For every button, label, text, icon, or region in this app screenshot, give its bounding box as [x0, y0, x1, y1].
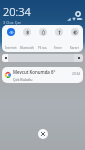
staticText: Mevcut Konumda 6°	[13, 69, 56, 75]
button[interactable]: Clear all notifications	[38, 129, 48, 139]
button[interactable]: Mevcut Konumda 6°	[2, 67, 83, 83]
button[interactable]: Fener	[51, 28, 66, 50]
button[interactable]: Pil tas.	[35, 28, 50, 50]
button[interactable]: İnternet	[3, 28, 18, 50]
button[interactable]: Bluetooth	[19, 28, 34, 50]
staticText: Fener	[54, 46, 63, 50]
staticText: 3 Oca Çar	[3, 20, 22, 25]
staticText: Pil tas.	[38, 46, 48, 50]
button[interactable]	[2, 54, 83, 62]
staticText: 20:34	[3, 4, 31, 19]
staticText: 20:34	[72, 72, 81, 76]
staticText: Karart	[70, 46, 79, 50]
button[interactable]: Settings	[75, 11, 81, 17]
staticText: İnternet	[5, 46, 17, 50]
staticText: Çok Bulutlu	[13, 77, 33, 82]
button[interactable]: Karart	[67, 28, 82, 50]
staticText: Bluetooth	[20, 46, 34, 50]
